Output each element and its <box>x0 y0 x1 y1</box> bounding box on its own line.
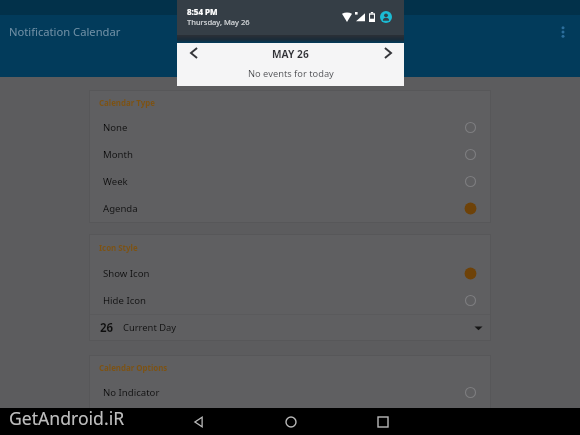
staticText: Notification Calendar <box>9 24 121 39</box>
button[interactable]: More options <box>552 21 574 43</box>
button[interactable]: Month <box>89 141 491 168</box>
button[interactable]: User account <box>380 11 392 23</box>
button[interactable]: Hide Icon <box>89 287 491 314</box>
staticText: Calendar Type <box>99 98 155 109</box>
button[interactable]: Recent apps <box>370 409 395 434</box>
staticText: 8:54 PM <box>187 6 218 17</box>
staticText: Week <box>103 175 128 188</box>
staticText: Calendar Options <box>99 363 168 374</box>
staticText: MAY 26 <box>272 47 309 61</box>
button[interactable]: No Indicator <box>89 379 491 406</box>
staticText: Month <box>103 148 133 161</box>
button[interactable]: 26 <box>89 314 491 341</box>
button[interactable]: Next day <box>375 43 401 63</box>
button[interactable]: Back <box>187 410 211 434</box>
button[interactable]: Previous day <box>181 43 207 63</box>
staticText: No events for today <box>248 67 334 80</box>
staticText: Thursday, May 26 <box>187 17 250 27</box>
staticText: 26 <box>100 320 114 336</box>
button[interactable]: Home <box>279 410 302 433</box>
staticText: None <box>103 121 128 134</box>
staticText: Show Icon <box>103 267 150 280</box>
button[interactable]: None <box>89 114 491 141</box>
staticText: Agenda <box>103 202 138 215</box>
staticText: Current Day <box>123 321 177 334</box>
staticText: No Indicator <box>103 386 160 399</box>
button[interactable]: Week <box>89 168 491 195</box>
staticText: GetAndroid.iR <box>9 406 125 430</box>
staticText: Hide Icon <box>103 294 146 307</box>
button[interactable]: Agenda <box>89 195 491 222</box>
button[interactable]: Show Icon <box>89 260 491 287</box>
staticText: Icon Style <box>99 243 138 254</box>
